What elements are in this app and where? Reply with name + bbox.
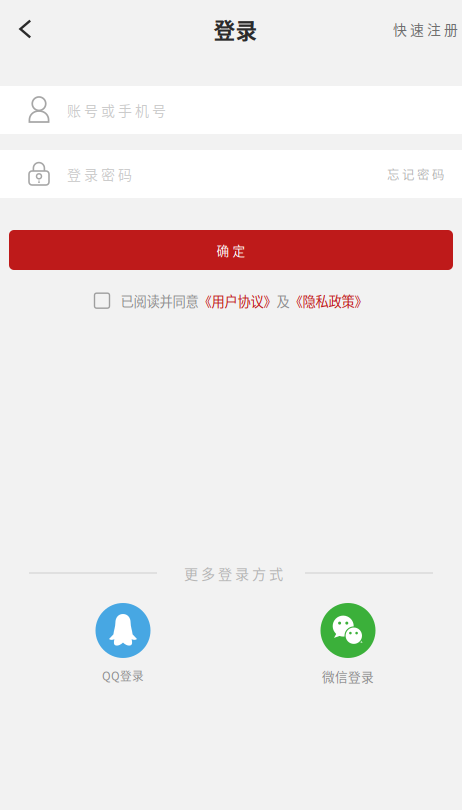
button[interactable]: 微信登录: [300, 603, 396, 696]
button[interactable]: 忘 记 密 码: [387, 165, 444, 183]
button[interactable]: 返回: [0, 4, 46, 54]
button[interactable]: 《用户协议》: [198, 291, 276, 310]
staticText: 登录: [213, 13, 257, 45]
staticText: QQ登录: [102, 667, 144, 684]
staticText: 快 速 注 册: [393, 19, 458, 39]
staticText: 账 号 或 手 机 号: [67, 100, 166, 120]
staticText: 及: [276, 291, 289, 310]
button[interactable]: 《隐私政策》: [289, 291, 367, 310]
staticText: 《用户协议》: [198, 291, 276, 310]
button[interactable]: 快 速 注 册: [381, 4, 462, 54]
button[interactable]: 同意用户协议与隐私政策: [94, 293, 120, 308]
button[interactable]: 确 定: [9, 230, 453, 270]
staticText: 《隐私政策》: [289, 291, 367, 310]
staticText: 微信登录: [322, 667, 374, 685]
button[interactable]: QQ登录: [75, 603, 171, 696]
staticText: 确 定: [216, 241, 245, 259]
staticText: 登 录 密 码: [67, 164, 132, 184]
staticText: 忘 记 密 码: [387, 165, 444, 183]
staticText: 已阅读并同意: [120, 291, 198, 310]
staticText: 更 多 登 录 方 式: [184, 563, 283, 583]
